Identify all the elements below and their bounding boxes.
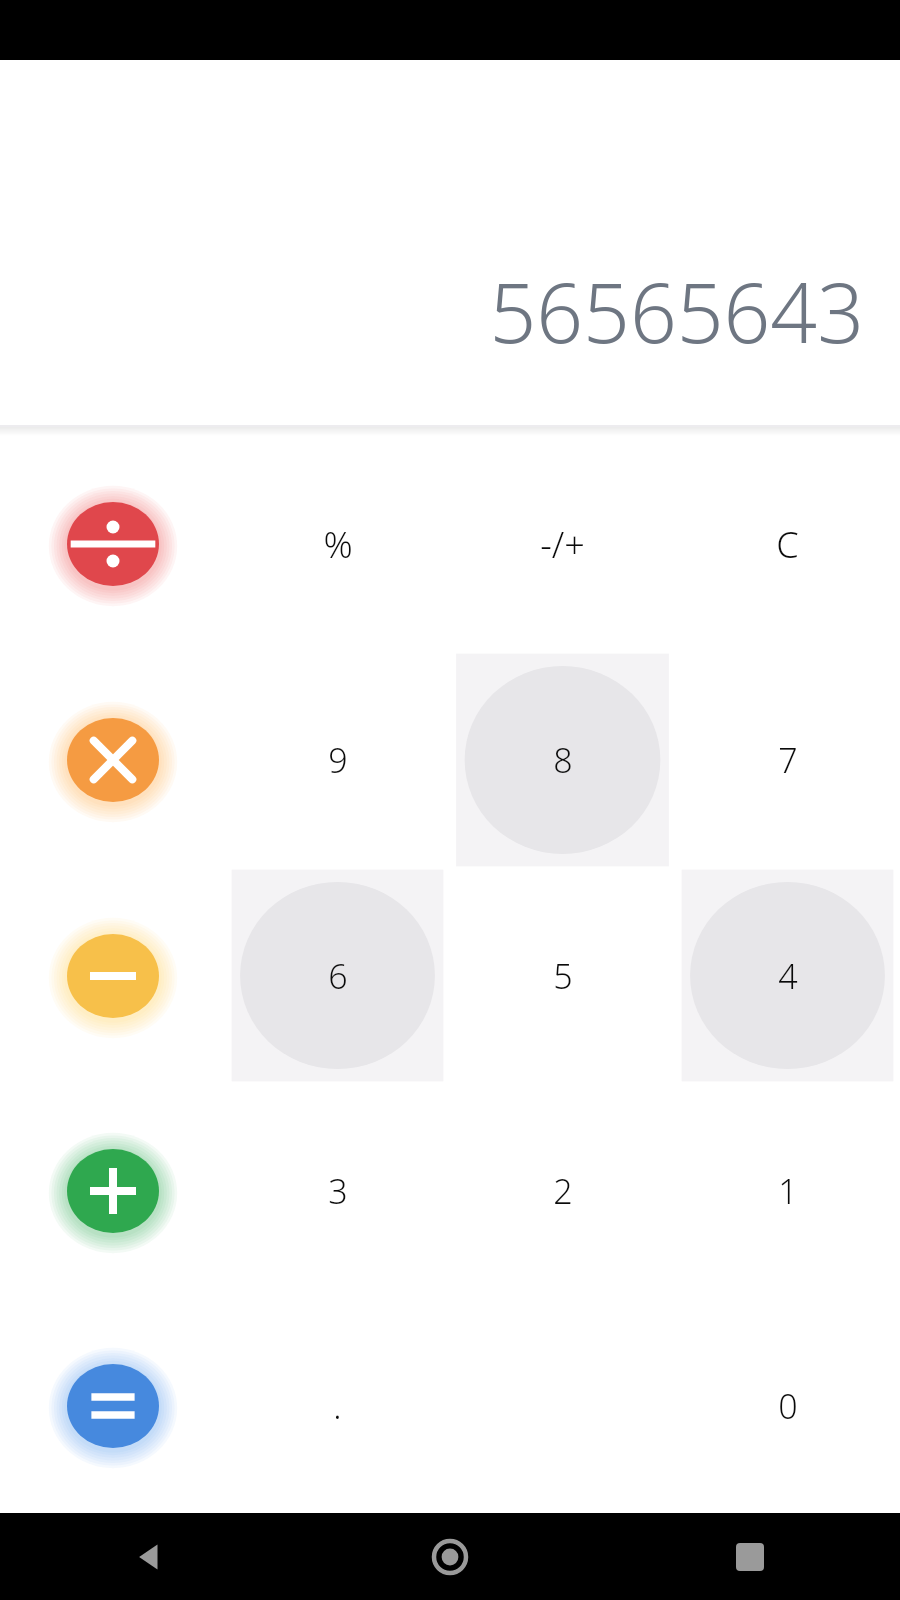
button[interactable]: 6 xyxy=(225,868,450,1083)
staticText: 6 xyxy=(328,953,348,999)
staticText: 1 xyxy=(778,1168,798,1214)
staticText: 0 xyxy=(778,1383,798,1429)
button[interactable]: 1 xyxy=(675,1083,900,1298)
staticText: 8 xyxy=(553,737,573,783)
button[interactable]: 4 xyxy=(675,868,900,1083)
staticText: 56565643 xyxy=(489,255,864,367)
button[interactable]: 8 xyxy=(450,652,675,868)
button[interactable]: Equals xyxy=(0,1298,225,1513)
staticText: 7 xyxy=(778,737,798,783)
staticText: C xyxy=(776,520,799,569)
staticText: 9 xyxy=(328,737,348,783)
staticText: . xyxy=(333,1383,342,1429)
button[interactable]: Back xyxy=(0,1513,300,1600)
button[interactable]: Home xyxy=(300,1513,600,1600)
button[interactable]: Add xyxy=(0,1083,225,1298)
button[interactable]: C xyxy=(675,436,900,652)
button[interactable]: Recent apps xyxy=(600,1513,900,1600)
staticText: % xyxy=(323,520,353,569)
button[interactable]: 9 xyxy=(225,652,450,868)
button[interactable]: 7 xyxy=(675,652,900,868)
staticText: 2 xyxy=(553,1168,573,1214)
button[interactable]: 0 xyxy=(675,1298,900,1513)
button[interactable]: Divide xyxy=(0,436,225,652)
staticText: 3 xyxy=(328,1168,348,1214)
button[interactable]: Multiply xyxy=(0,652,225,868)
button[interactable]: % xyxy=(225,436,450,652)
button[interactable]: 2 xyxy=(450,1083,675,1298)
button[interactable]: -/+ xyxy=(450,436,675,652)
staticText: 5 xyxy=(553,953,573,999)
button[interactable]: 5 xyxy=(450,868,675,1083)
button[interactable]: 3 xyxy=(225,1083,450,1298)
staticText: 4 xyxy=(778,953,798,999)
button[interactable]: Subtract xyxy=(0,868,225,1083)
staticText: -/+ xyxy=(540,520,585,569)
